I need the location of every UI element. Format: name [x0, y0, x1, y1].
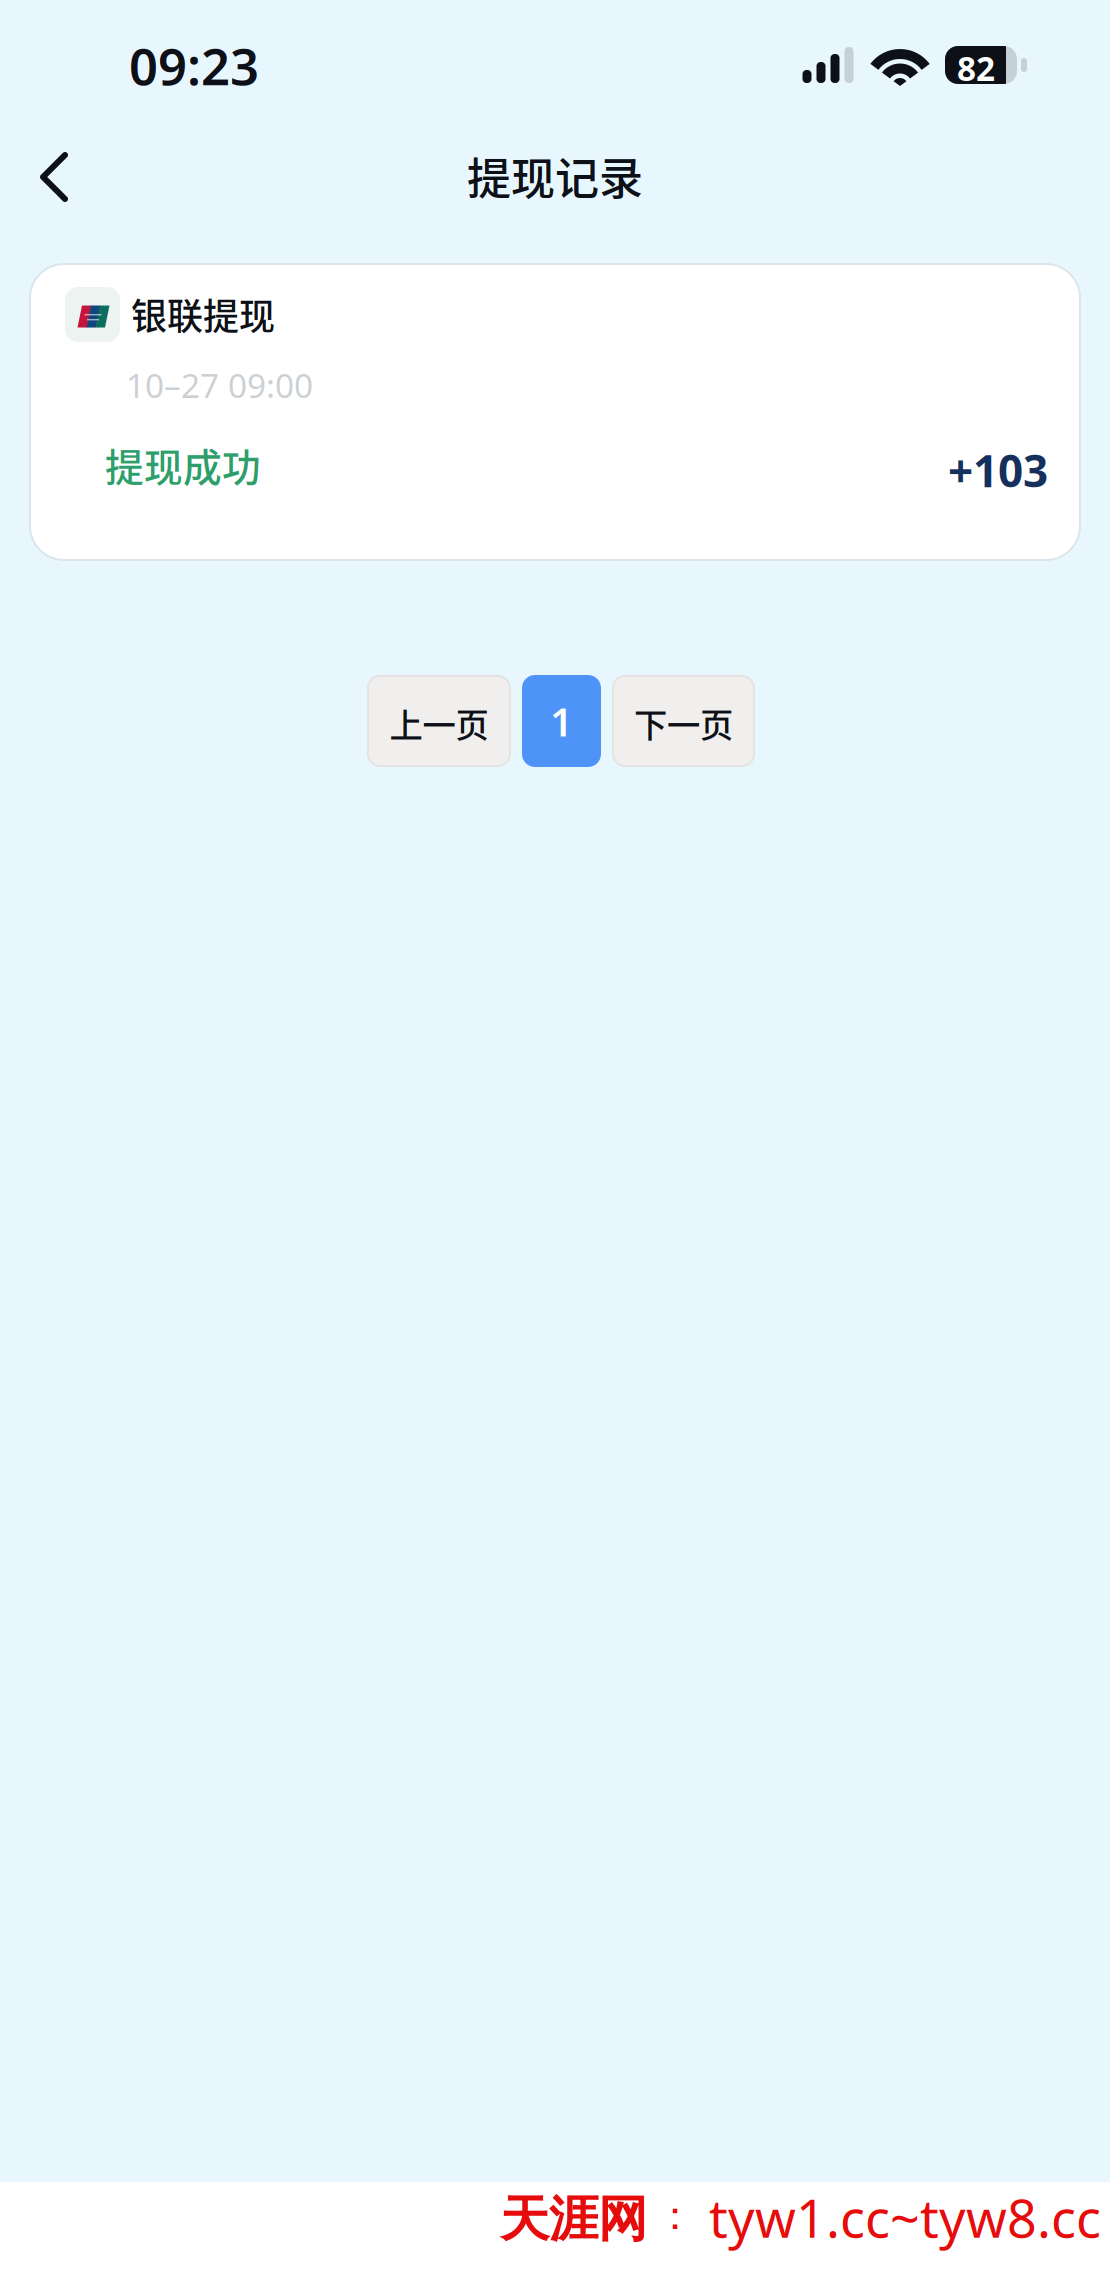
staticText: 天涯网 [500, 2189, 647, 2250]
button[interactable]: Back [10, 132, 100, 222]
staticText: 82 [957, 46, 995, 90]
staticText: +103 [948, 441, 1048, 499]
button[interactable]: 1 [523, 676, 600, 766]
button[interactable]: 银联提现 [30, 264, 1080, 560]
staticText: 提现记录 [467, 144, 643, 208]
staticText: 下一页 [634, 699, 733, 747]
staticText: 银联提现 [131, 288, 275, 340]
staticText: ： [655, 2191, 695, 2240]
button[interactable]: 下一页 [613, 676, 754, 766]
staticText: 提现成功 [105, 437, 261, 493]
staticText: 上一页 [389, 699, 488, 747]
staticText: tyw1.cc~tyw8.cc [709, 2183, 1101, 2252]
button[interactable]: 上一页 [368, 676, 510, 766]
staticText: 09:23 [129, 32, 259, 99]
staticText: 1 [550, 694, 573, 747]
staticText: 10–27 09:00 [126, 363, 313, 407]
